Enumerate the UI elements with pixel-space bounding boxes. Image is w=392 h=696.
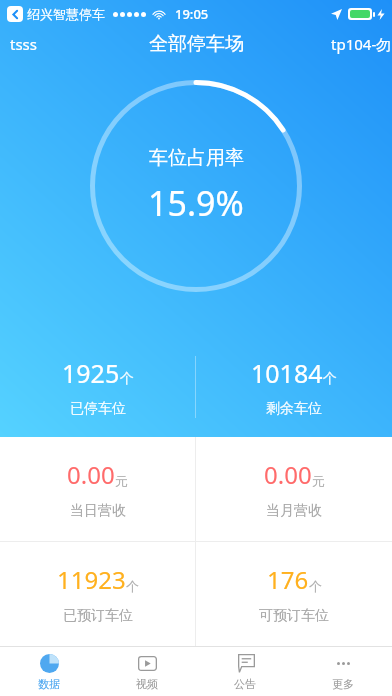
staticText: 176 — [267, 563, 309, 596]
button[interactable]: 11923 — [0, 542, 195, 646]
staticText: 0.00 — [67, 458, 115, 491]
staticText: 10184 — [251, 356, 323, 390]
staticText: 绍兴智慧停车 — [27, 6, 105, 22]
button[interactable]: 0.00 — [0, 437, 195, 541]
staticText: 可预订车位 — [259, 607, 329, 625]
staticText: 公告 — [234, 677, 256, 691]
staticText: 已预订车位 — [63, 607, 133, 625]
button[interactable]: Back — [7, 6, 23, 22]
staticText: 个 — [120, 370, 134, 388]
button[interactable]: 176 — [196, 542, 392, 646]
staticText: 已停车位 — [70, 400, 126, 418]
staticText: 11923 — [57, 563, 126, 596]
staticText: 个 — [309, 578, 322, 594]
staticText: 个 — [323, 370, 337, 388]
button[interactable]: 视频 — [98, 647, 196, 696]
staticText: 元 — [115, 473, 128, 489]
button[interactable]: 数据 — [0, 647, 98, 696]
button[interactable]: 0.00 — [196, 437, 392, 541]
staticText: 个 — [126, 578, 139, 594]
staticText: 剩余车位 — [266, 400, 322, 418]
button[interactable]: 1925 — [0, 337, 195, 437]
staticText: 更多 — [332, 677, 354, 691]
button[interactable]: 更多 — [294, 647, 392, 696]
staticText: 当日营收 — [70, 502, 126, 520]
staticText: 0.00 — [264, 458, 312, 491]
staticText: 15.9% — [148, 180, 244, 226]
staticText: 1925 — [62, 356, 120, 390]
staticText: 数据 — [38, 677, 60, 691]
staticText: 19:05 — [175, 5, 209, 23]
staticText: 车位占用率 — [149, 146, 244, 170]
staticText: 元 — [312, 473, 325, 489]
staticText: 视频 — [136, 677, 158, 691]
button[interactable]: 公告 — [196, 647, 294, 696]
button[interactable]: 10184 — [196, 337, 392, 437]
button[interactable]: tsss — [0, 34, 37, 54]
staticText: 当月营收 — [266, 502, 322, 520]
staticText: 全部停车场 — [149, 32, 244, 56]
button[interactable]: tp104-勿 — [327, 34, 392, 54]
